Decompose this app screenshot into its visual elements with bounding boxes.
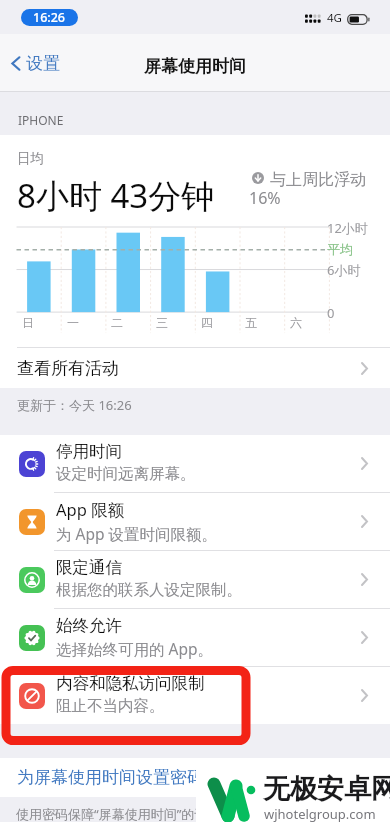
button[interactable]: 停用时间 [0,435,390,492]
staticText: 平均 [327,241,353,257]
staticText: 停用时间 [56,441,122,462]
staticText: 选择始终可用的 App。 [56,638,213,659]
staticText: 屏幕使用时间 [144,56,246,77]
staticText: 设置 [26,53,60,74]
staticText: 为屏幕使用时间设置密码 [17,767,204,788]
staticText: 16% [249,187,281,209]
staticText: 根据您的联系人设定限制。 [56,580,242,600]
staticText: 更新于：今天 16:26 [17,396,132,414]
staticText: 限定通信 [56,557,122,578]
staticText: 六 [290,315,302,330]
staticText: 8小时 43分钟 [17,173,215,218]
button[interactable]: App 限额 [0,493,390,550]
staticText: 一 [67,315,79,330]
staticText: 四 [201,315,213,330]
staticText: wjhotelgroup.com [264,805,376,822]
staticText: 0 [327,304,335,322]
staticText: App 限额 [56,498,125,521]
staticText: 日 [22,315,34,330]
staticText: 使用密码保障“屏幕使用时间”的设置 [16,805,221,822]
staticText: 阻止不当内容。 [56,696,165,716]
staticText: 6小时 [327,261,361,279]
staticText: IPHONE [18,112,64,128]
staticText: 查看所有活动 [17,358,119,379]
staticText: 始终允许 [56,615,122,636]
button[interactable]: 查看所有活动 [0,348,390,388]
staticText: 五 [245,315,257,330]
staticText: 为 App 设置时间限额。 [56,523,218,544]
staticText: 二 [111,315,123,330]
staticText: 内容和隐私访问限制 [56,673,205,694]
staticText: 与上周比浮动 [270,170,366,190]
button[interactable]: 设置 [8,48,63,78]
staticText: 无极安卓网 [263,772,390,806]
staticText: 日均 [17,150,44,167]
button[interactable]: 内容和隐私访问限制 [0,667,390,724]
button[interactable]: 为屏幕使用时间设置密码 [0,758,390,797]
staticText: 三 [156,315,168,330]
button[interactable]: 始终允许 [0,609,390,666]
button[interactable]: 限定通信 [0,551,390,608]
staticText: 设定时间远离屏幕。 [56,464,196,484]
staticText: 12小时 [327,219,368,237]
staticText: 4G [327,10,342,26]
staticText: 16:26 [33,9,66,26]
